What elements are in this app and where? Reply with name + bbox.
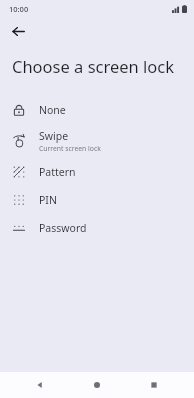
button[interactable]: None [0, 96, 194, 124]
button[interactable]: Back [23, 372, 57, 398]
button[interactable]: Password [0, 214, 194, 242]
staticText: PIN [39, 193, 57, 207]
staticText: Choose a screen lock [12, 55, 182, 77]
button[interactable]: PIN [0, 186, 194, 214]
staticText: None [39, 103, 66, 117]
staticText: Swipe [39, 129, 69, 143]
button[interactable]: Recent apps [137, 372, 171, 398]
staticText: 10:00 [9, 4, 29, 14]
button[interactable]: Back [6, 19, 30, 43]
staticText: Pattern [39, 165, 76, 179]
button[interactable]: Pattern [0, 158, 194, 186]
staticText: Current screen lock [39, 144, 101, 153]
button[interactable]: Home [80, 372, 114, 398]
button[interactable]: Swipe [0, 124, 194, 158]
staticText: Password [39, 221, 87, 235]
